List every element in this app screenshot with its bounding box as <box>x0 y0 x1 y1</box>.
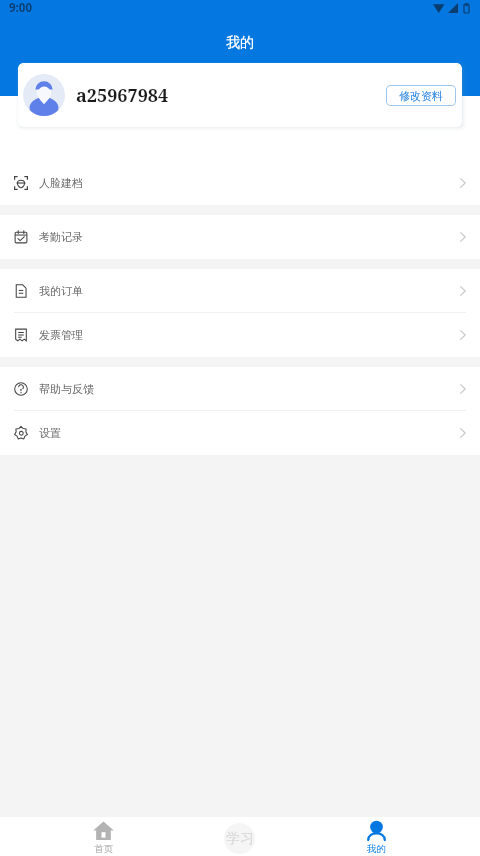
button[interactable]: 首页 <box>35 817 171 856</box>
button[interactable]: 发票管理 <box>0 313 480 357</box>
staticText: 修改资料 <box>399 89 443 103</box>
button[interactable]: 修改资料 <box>386 85 456 106</box>
staticText: 帮助与反馈 <box>39 382 94 396</box>
button[interactable]: 设置 <box>0 411 480 455</box>
button[interactable]: a25967984 <box>18 63 462 127</box>
staticText: 设置 <box>39 426 61 440</box>
staticText: 首页 <box>94 843 113 855</box>
staticText: 发票管理 <box>39 328 83 342</box>
button[interactable]: 我的 <box>308 817 445 856</box>
staticText: 人脸建档 <box>39 176 83 190</box>
staticText: 我的 <box>367 843 386 855</box>
button[interactable]: 考勤记录 <box>0 215 480 259</box>
button[interactable]: 帮助与反馈 <box>0 367 480 411</box>
staticText: a25967984 <box>76 83 169 108</box>
button[interactable]: 扫码 <box>171 817 308 856</box>
staticText: 学习 <box>226 830 254 848</box>
button[interactable]: 我的订单 <box>0 269 480 313</box>
staticText: 考勤记录 <box>39 230 83 244</box>
staticText: 我的 <box>226 34 254 52</box>
staticText: 我的订单 <box>39 284 83 298</box>
button[interactable]: 人脸建档 <box>0 161 480 205</box>
staticText: 9:00 <box>9 0 32 16</box>
